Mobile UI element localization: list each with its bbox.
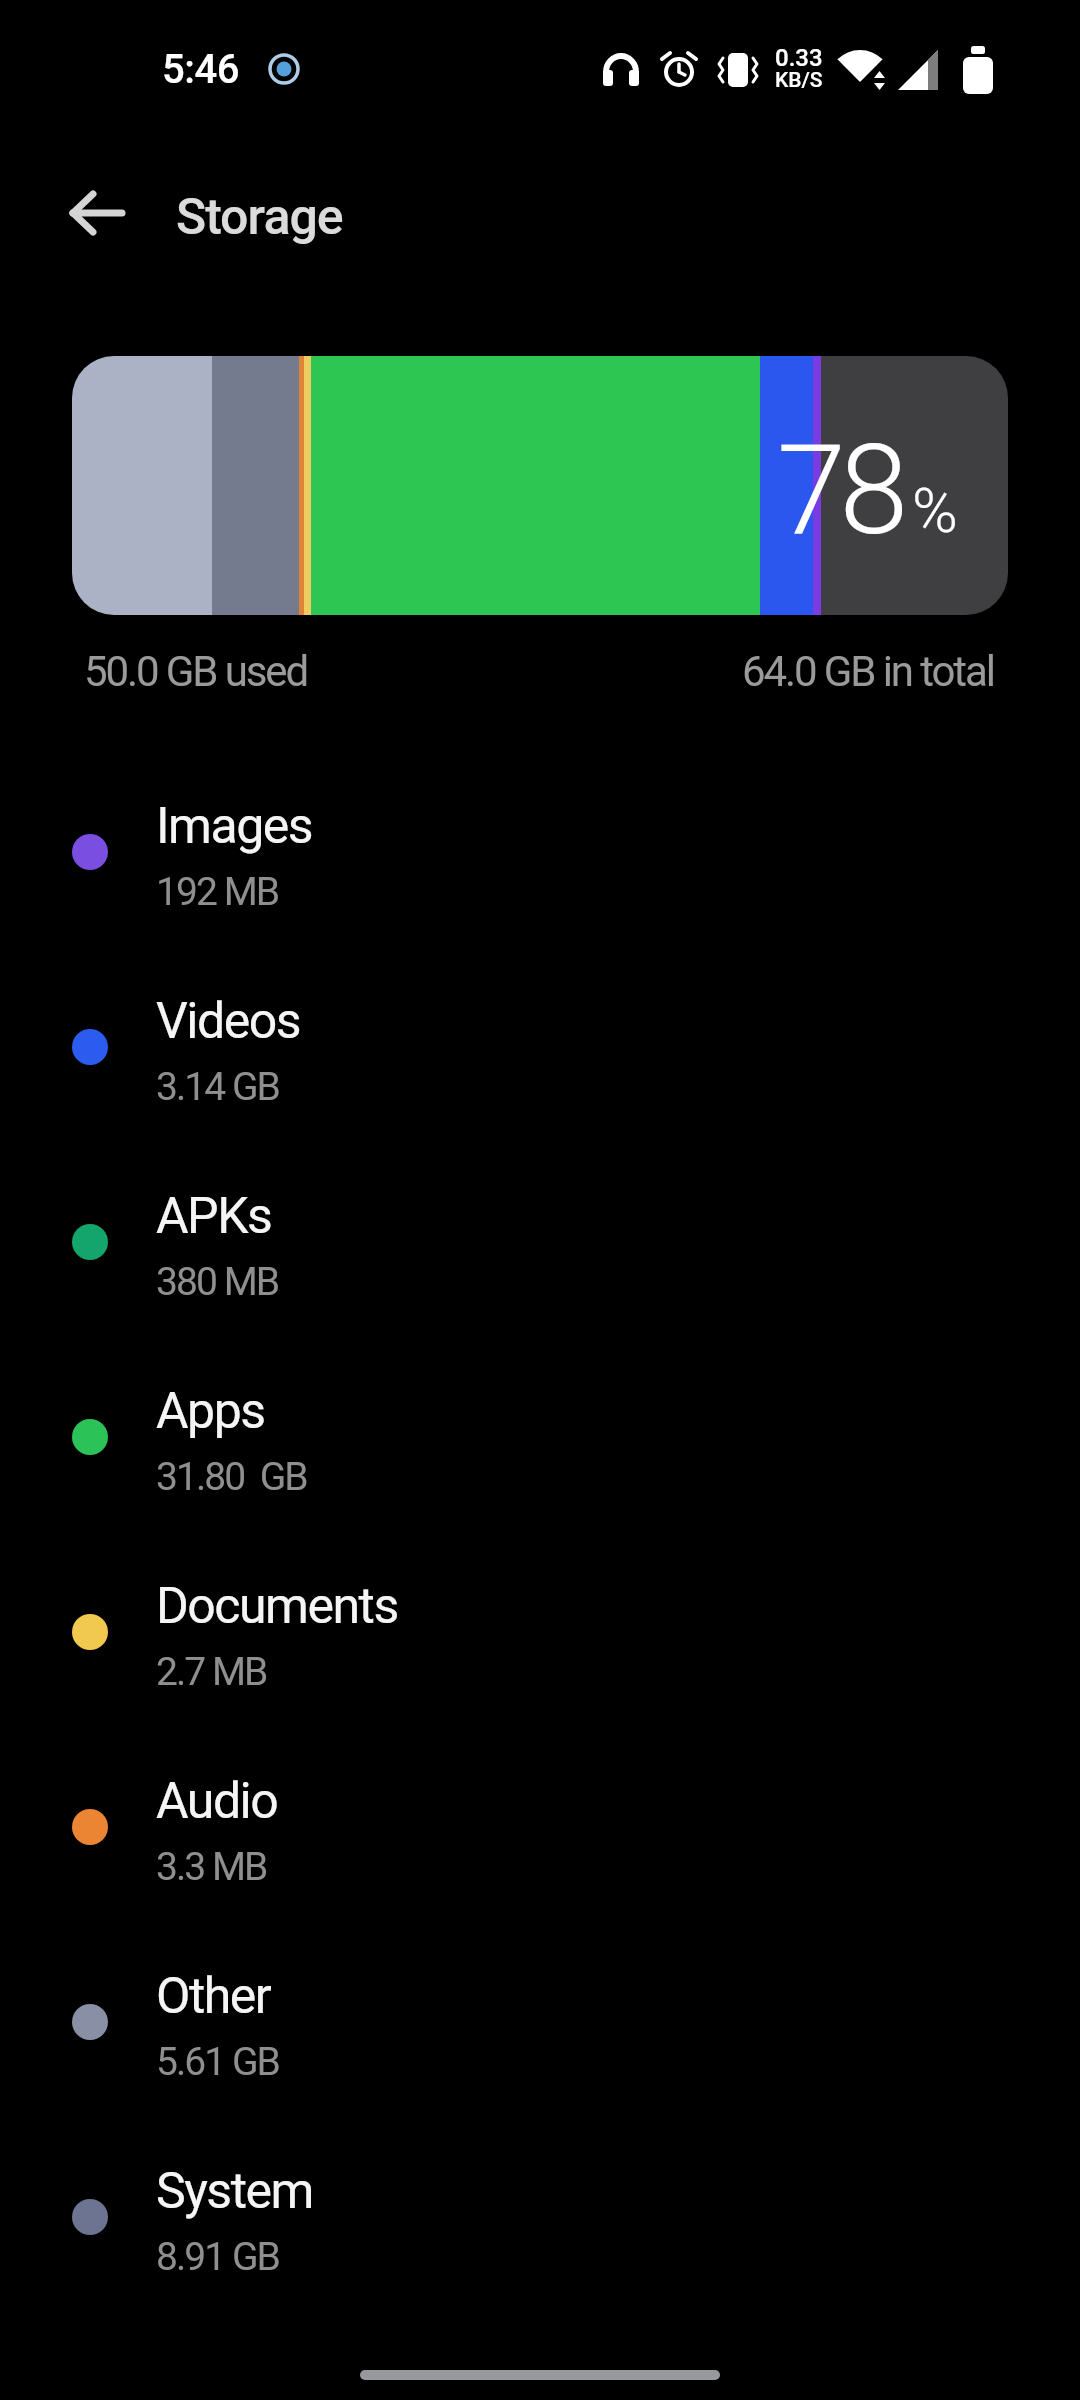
button[interactable]: APKs xyxy=(0,1145,1080,1340)
staticText: Images xyxy=(156,797,313,856)
staticText: KB/S xyxy=(775,68,823,93)
button[interactable]: Images xyxy=(0,755,1080,950)
button[interactable] xyxy=(68,191,126,235)
button[interactable]: Audio xyxy=(0,1730,1080,1925)
button[interactable]: System xyxy=(0,2120,1080,2315)
staticText: Documents xyxy=(156,1577,398,1636)
staticText: 3.3 MB xyxy=(156,1844,267,1890)
button[interactable]: Apps xyxy=(0,1340,1080,1535)
staticText: 5:46 xyxy=(162,46,240,93)
staticText: 192 MB xyxy=(156,869,279,915)
staticText: 8.91 GB xyxy=(156,2234,279,2280)
staticText: 5.61 GB xyxy=(156,2039,279,2085)
staticText: 380 MB xyxy=(156,1259,279,1305)
staticText: System xyxy=(156,2162,313,2221)
staticText: Other xyxy=(156,1967,271,2026)
staticText: Storage xyxy=(176,188,343,247)
staticText: Audio xyxy=(156,1772,278,1831)
staticText: 78 xyxy=(777,418,903,563)
staticText: APKs xyxy=(156,1187,272,1246)
button[interactable]: Documents xyxy=(0,1535,1080,1730)
staticText: 3.14 GB xyxy=(156,1064,279,1110)
staticText: 64.0 GB in total xyxy=(742,647,994,696)
staticText: 31.80 GB xyxy=(156,1454,307,1500)
staticText: Videos xyxy=(156,992,301,1051)
staticText: % xyxy=(912,474,958,547)
staticText: 0.33 xyxy=(775,44,823,72)
staticText: 50.0 GB used xyxy=(84,647,308,696)
button[interactable]: Other xyxy=(0,1925,1080,2120)
staticText: 2.7 MB xyxy=(156,1649,267,1695)
button[interactable]: Videos xyxy=(0,950,1080,1145)
staticText: Apps xyxy=(156,1382,265,1441)
